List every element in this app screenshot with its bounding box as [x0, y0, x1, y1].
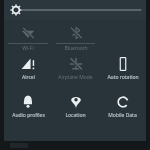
button[interactable]: Location: [52, 91, 99, 129]
button[interactable]: Wi-Fi: [4, 22, 52, 53]
staticText: Bluetooth: [64, 45, 88, 52]
staticText: Aircel: [22, 74, 35, 81]
button[interactable]: Bluetooth: [52, 22, 99, 53]
button[interactable]: Mobile Data: [99, 91, 146, 129]
staticText: Auto rotation: [107, 74, 139, 81]
button[interactable]: Brightness: [4, 0, 146, 20]
staticText: Wi-Fi: [22, 45, 34, 52]
button[interactable]: Aircel: [4, 53, 52, 91]
staticText: Location: [65, 112, 86, 119]
button[interactable]: Auto rotation: [99, 53, 146, 91]
staticText: Airplane Mode: [58, 74, 93, 81]
button[interactable]: Audio profiles: [4, 91, 52, 129]
staticText: Audio profiles: [12, 112, 45, 119]
staticText: Mobile Data: [108, 112, 137, 119]
button[interactable]: Airplane Mode: [52, 53, 99, 91]
